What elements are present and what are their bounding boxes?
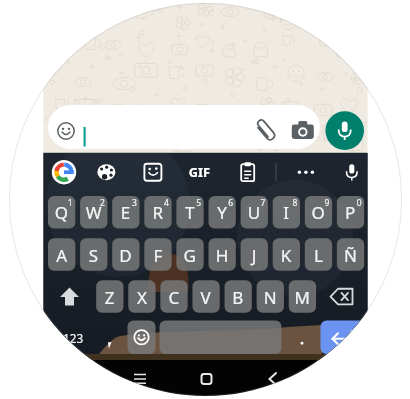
button[interactable] [0, 0, 410, 399]
